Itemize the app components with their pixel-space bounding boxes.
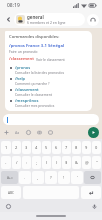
button[interactable]: 1 (1, 141, 11, 154)
button[interactable]: Format (14, 129, 21, 136)
button[interactable]: 5 (42, 141, 51, 154)
button[interactable]: 8 (72, 141, 81, 154)
staticText: , (37, 175, 39, 180)
button[interactable]: : (22, 156, 31, 169)
button[interactable]: Add (3, 129, 10, 136)
button[interactable]: general (14, 13, 85, 26)
staticText: ? (50, 175, 52, 180)
staticText: Faire un pronostic (9, 49, 38, 54)
button[interactable]: ' (71, 171, 83, 184)
staticText: Consulter le classement (15, 92, 52, 96)
button[interactable]: /classement (9, 86, 88, 97)
staticText: 4 (35, 145, 38, 150)
staticText: & (75, 160, 78, 165)
button[interactable]: 6 (52, 141, 61, 154)
button[interactable]: Commandes disponibles: (5, 31, 92, 111)
staticText: / (16, 160, 18, 165)
button[interactable]: 0 (92, 141, 101, 154)
button[interactable]: Return (81, 186, 101, 199)
staticText: ) (56, 160, 58, 165)
button[interactable]: Backspace (84, 171, 101, 184)
staticText: Comment ça marche ? (15, 81, 50, 85)
button[interactable]: " (92, 156, 101, 169)
button[interactable]: Gallery (47, 129, 54, 136)
staticText: general (27, 14, 44, 20)
staticText: $ (65, 160, 68, 165)
button[interactable]: Headphones (87, 14, 99, 26)
button[interactable]: ! (58, 171, 70, 184)
staticText: Voir le classement (36, 57, 65, 62)
staticText: 8 (75, 145, 78, 150)
staticText: ' (77, 175, 78, 180)
staticText: 2 (15, 145, 18, 150)
staticText: ( (46, 160, 48, 165)
button[interactable]: 2 (12, 141, 21, 154)
staticText: Consulter la liste des pronostics (15, 70, 65, 74)
button[interactable]: Camera (36, 129, 43, 136)
staticText: 6 membres et 2 en ligne (27, 20, 66, 25)
staticText: - (5, 160, 7, 165)
staticText: 7 (65, 145, 68, 150)
button[interactable]: /mesprônos (9, 97, 88, 108)
button[interactable]: Emoji (4, 202, 12, 210)
button[interactable]: ; (32, 156, 41, 169)
button[interactable]: / (12, 156, 21, 169)
button[interactable]: ) (52, 156, 61, 169)
staticText: /mesprônos (15, 98, 39, 103)
staticText: ! (63, 175, 65, 180)
button[interactable]: ( (42, 156, 51, 169)
button[interactable]: /pronos (9, 64, 88, 75)
button[interactable]: , (32, 171, 44, 184)
button[interactable]: Back (3, 14, 14, 25)
staticText: 1 (5, 145, 8, 150)
staticText: /help (15, 76, 26, 81)
staticText: 6 (55, 145, 58, 150)
button[interactable]: Voice input (90, 202, 98, 210)
button[interactable] (3, 114, 99, 125)
staticText: 08:19 (7, 2, 20, 9)
staticText: /classement (9, 56, 34, 62)
staticText: 3 (25, 145, 28, 150)
staticText: 0 (95, 145, 98, 150)
staticText: 9 (85, 145, 88, 150)
staticText: 5 (45, 145, 48, 150)
staticText: #+= (7, 176, 13, 180)
staticText: /classement (15, 87, 39, 92)
button[interactable]: & (72, 156, 81, 169)
button[interactable]: $ (62, 156, 71, 169)
button[interactable]: 3 (22, 141, 31, 154)
staticText: . (24, 175, 26, 180)
staticText: " (96, 160, 98, 165)
staticText: Commandes disponibles: (9, 34, 60, 40)
button[interactable]: 9 (82, 141, 91, 154)
staticText: Aa (15, 130, 20, 135)
staticText: @ (85, 160, 89, 165)
button[interactable]: 7 (62, 141, 71, 154)
button[interactable]: Symbols (1, 171, 18, 184)
button[interactable]: 4 (32, 141, 41, 154)
button[interactable]: Sticker (25, 129, 32, 136)
staticText: ABC (8, 191, 15, 195)
staticText: : (26, 160, 28, 165)
staticText: Consulter mes pronostics (15, 103, 55, 107)
staticText: /pronos (15, 65, 31, 70)
button[interactable]: Send (88, 127, 99, 138)
staticText: /pronos France 3-1 Sénégal (9, 43, 65, 49)
button[interactable]: @ (82, 156, 91, 169)
button[interactable]: /help (9, 75, 88, 86)
staticText: ; (36, 160, 38, 165)
button[interactable]: ABC (1, 186, 21, 199)
button[interactable]: - (1, 156, 11, 169)
button[interactable]: ? (45, 171, 57, 184)
